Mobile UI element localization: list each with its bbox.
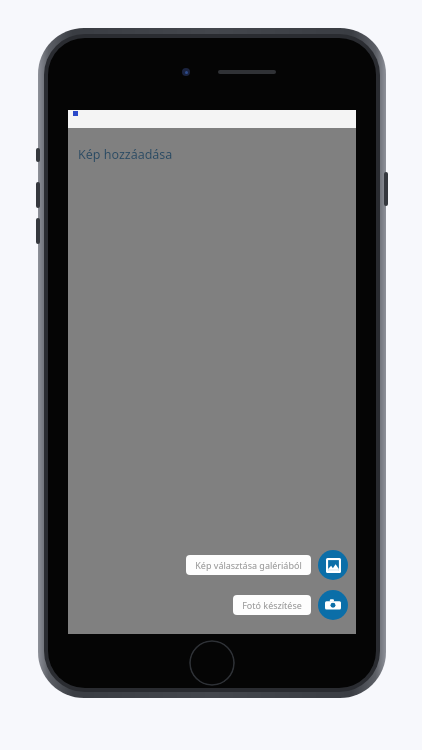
- staticText: Fotó készítése: [242, 599, 302, 611]
- staticText: Kép hozzáadása: [78, 146, 173, 163]
- button[interactable]: Fotó készítése: [233, 595, 311, 615]
- button[interactable]: Take photo: [318, 590, 348, 620]
- staticText: Kép választása galériából: [195, 559, 302, 571]
- button[interactable]: Choose picture from gallery: [318, 550, 348, 580]
- button[interactable]: Kép választása galériából: [186, 555, 311, 575]
- button[interactable]: Home: [189, 640, 235, 686]
